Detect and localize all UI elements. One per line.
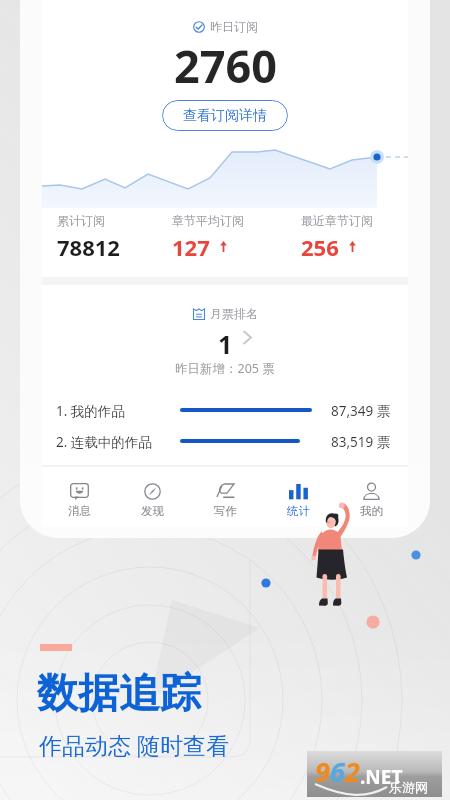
staticText: 83,519 票 [331,433,391,449]
other: Illustration [0,0,450,800]
staticText: 写作 [214,504,237,518]
staticText: 78812 [57,232,120,262]
button[interactable]: 发现 [116,465,189,521]
staticText: 数据追踪 [37,668,201,720]
staticText: 我的 [360,504,383,518]
button[interactable]: 统计 [262,465,335,521]
staticText: 9 [315,753,330,790]
staticText: 256 [301,232,339,262]
staticText: 昨日订阅 [210,19,258,34]
staticText: 2 [345,753,360,790]
staticText: 87,349 票 [331,402,391,418]
staticText: .NET [360,764,403,790]
staticText: 乐游网 [389,779,428,795]
button[interactable]: 1. 我的作品 [42,402,408,418]
button[interactable]: 我的 [335,465,408,521]
staticText: 章节平均订阅 [172,213,244,228]
staticText: 发现 [141,504,164,518]
staticText: 最近章节订阅 [301,213,373,228]
staticText: 6 [330,753,345,790]
button[interactable]: 消息 [42,465,116,521]
staticText: 统计 [287,504,310,518]
staticText: 消息 [68,504,91,518]
staticText: 作品动态 随时查看 [39,729,229,760]
staticText: 查看订阅详情 [183,107,267,125]
staticText: 2760 [174,35,277,96]
staticText: 昨日新增：205 票 [175,360,275,377]
button[interactable]: 查看订阅详情 [162,100,288,131]
button[interactable]: 写作 [189,465,262,521]
staticText: 1 [218,327,233,361]
staticText: 2. 连载中的作品 [56,433,152,449]
staticText: 累计订阅 [57,213,105,228]
staticText: 月票排名 [210,306,258,321]
staticText: 1. 我的作品 [56,402,125,418]
button[interactable]: 2. 连载中的作品 [42,433,408,449]
staticText: 127 [172,232,210,262]
